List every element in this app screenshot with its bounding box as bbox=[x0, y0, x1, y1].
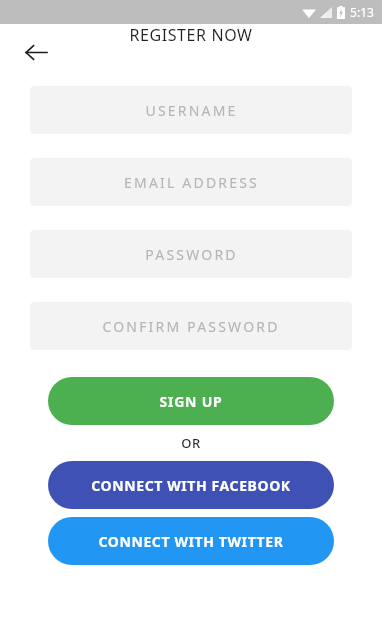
button[interactable]: PASSWORD bbox=[30, 230, 352, 278]
staticText: CONFIRM PASSWORD bbox=[102, 317, 280, 336]
button[interactable]: CONNECT WITH FACEBOOK bbox=[48, 461, 334, 509]
staticText: 5:13 bbox=[350, 4, 374, 20]
button[interactable]: CONNECT WITH TWITTER bbox=[48, 517, 334, 565]
staticText: SIGN UP bbox=[159, 392, 223, 411]
button[interactable]: USERNAME bbox=[30, 86, 352, 134]
staticText: PASSWORD bbox=[145, 245, 238, 264]
staticText: CONNECT WITH FACEBOOK bbox=[91, 476, 291, 495]
staticText: OR bbox=[181, 434, 201, 452]
staticText: USERNAME bbox=[145, 101, 238, 120]
button[interactable]: Back bbox=[16, 32, 56, 72]
staticText: EMAIL ADDRESS bbox=[124, 173, 259, 192]
staticText: CONNECT WITH TWITTER bbox=[98, 532, 284, 551]
button[interactable]: EMAIL ADDRESS bbox=[30, 158, 352, 206]
button[interactable]: SIGN UP bbox=[48, 377, 334, 425]
button[interactable]: CONFIRM PASSWORD bbox=[30, 302, 352, 350]
staticText: REGISTER NOW bbox=[129, 24, 253, 46]
